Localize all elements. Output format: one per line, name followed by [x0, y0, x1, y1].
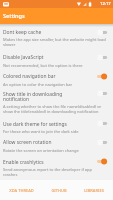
staticText: Show title in downloading notification — [3, 91, 82, 103]
staticText: Colored navigation bar — [3, 73, 82, 80]
staticText: GITHUB — [51, 188, 67, 193]
button[interactable] — [0, 117, 113, 136]
staticText: For those who want to join the dark side — [3, 129, 110, 134]
button[interactable] — [0, 49, 113, 70]
button[interactable]: Disable JavaScript — [97, 52, 110, 63]
staticText: Disable JavaScript — [3, 54, 82, 61]
button[interactable]: GITHUB — [46, 182, 72, 199]
staticText: Rotate the screen on orientation change — [3, 148, 110, 153]
staticText: Enable crashlytics — [3, 159, 82, 166]
staticText: Allow screen rotation — [3, 139, 82, 146]
staticText: LIBRARIES — [84, 188, 104, 193]
button[interactable] — [0, 155, 113, 180]
staticText: 12:17 — [100, 1, 111, 7]
button[interactable]: Show title in downloading notification — [97, 88, 110, 99]
button[interactable]: Use dark theme for settings — [97, 118, 110, 129]
staticText: Use dark theme for settings — [3, 121, 82, 128]
button[interactable]: XDA THREAD — [4, 182, 39, 199]
staticText: A setting whether to show the file name(… — [3, 104, 110, 114]
button[interactable] — [0, 136, 113, 155]
staticText: An option to color the navigation bar — [3, 82, 110, 87]
button[interactable]: Enable crashlytics — [97, 156, 110, 167]
staticText: Not recommended, but the option is there — [3, 63, 110, 68]
staticText: Dont keep cache — [3, 29, 82, 36]
button[interactable]: Allow screen rotation — [97, 137, 110, 148]
button[interactable] — [0, 88, 113, 117]
staticText: Settings — [3, 12, 25, 20]
staticText: Send anonymous report to the developer i… — [3, 167, 110, 177]
button[interactable]: LIBRARIES — [79, 182, 109, 199]
button[interactable] — [0, 70, 113, 88]
staticText: Makes the app size smaller, but the webs… — [3, 37, 110, 47]
staticText: XDA THREAD — [9, 188, 34, 193]
button[interactable]: Dont keep cache — [97, 27, 110, 38]
button[interactable]: Colored navigation bar — [97, 71, 110, 82]
button[interactable] — [0, 25, 113, 49]
